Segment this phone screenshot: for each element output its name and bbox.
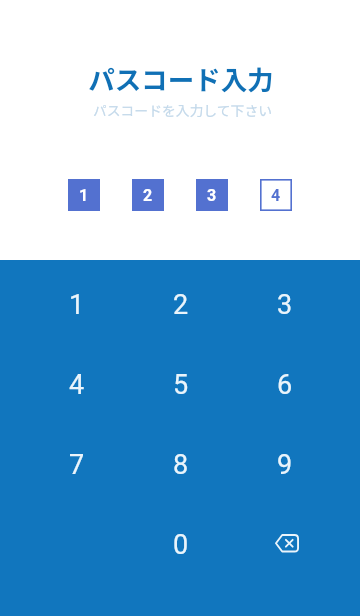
staticText: 3: [207, 186, 217, 205]
staticText: 6: [277, 369, 293, 401]
staticText: パスコード入力: [88, 59, 274, 97]
staticText: 4: [69, 369, 85, 401]
staticText: パスコードを入力して下さい: [93, 100, 272, 120]
button[interactable]: 4: [260, 179, 292, 211]
staticText: 2: [143, 186, 153, 205]
staticText: 4: [271, 186, 281, 205]
button[interactable]: 6: [233, 345, 337, 425]
staticText: 7: [69, 449, 85, 481]
button[interactable]: 3: [233, 265, 337, 345]
staticText: 8: [173, 449, 189, 481]
button[interactable]: 1: [68, 179, 100, 211]
button[interactable]: 0: [129, 505, 233, 585]
button[interactable]: 9: [233, 425, 337, 505]
staticText: 1: [69, 289, 85, 321]
staticText: 1: [79, 186, 89, 205]
staticText: 9: [277, 449, 293, 481]
button[interactable]: 1: [24, 265, 129, 345]
button[interactable]: 4: [24, 345, 129, 425]
staticText: 2: [173, 289, 189, 321]
button[interactable]: 3: [196, 179, 228, 211]
staticText: 0: [173, 529, 189, 561]
button[interactable]: 5: [129, 345, 233, 425]
staticText: 5: [173, 369, 189, 401]
staticText: 3: [277, 289, 293, 321]
button[interactable]: Backspace: [233, 505, 337, 585]
button[interactable]: 2: [129, 265, 233, 345]
button[interactable]: 2: [132, 179, 164, 211]
button[interactable]: 7: [24, 425, 129, 505]
button[interactable]: 8: [129, 425, 233, 505]
